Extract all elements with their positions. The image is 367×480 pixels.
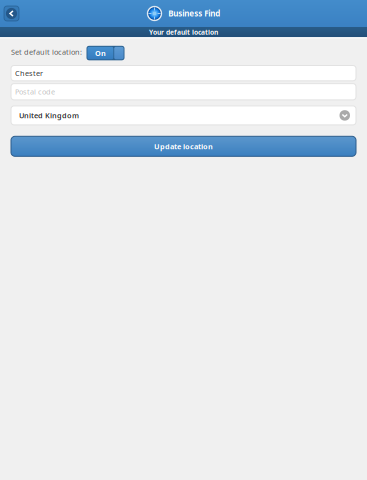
button[interactable]: Back <box>4 6 19 21</box>
button[interactable]: Postal code <box>11 84 356 100</box>
staticText: Set default location: <box>11 47 82 57</box>
staticText: Chester <box>15 68 43 78</box>
staticText: Postal code <box>15 87 55 97</box>
staticText: On <box>95 48 106 58</box>
button[interactable]: Update location <box>11 136 356 156</box>
staticText: United Kingdom <box>19 110 79 120</box>
button[interactable]: Set default location, on <box>86 46 124 60</box>
button[interactable]: United Kingdom <box>11 106 356 125</box>
button[interactable]: Chester <box>11 65 356 81</box>
staticText: Your default location <box>149 28 218 37</box>
staticText: Update location <box>154 141 213 151</box>
staticText: Business Find <box>168 8 220 19</box>
